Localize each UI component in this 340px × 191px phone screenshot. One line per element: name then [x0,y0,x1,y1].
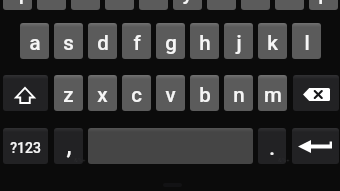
staticText: n [233,83,245,107]
staticText: f [133,31,141,55]
button[interactable]: h [190,23,219,59]
button[interactable]: p [309,0,338,10]
button[interactable]: q [3,0,32,10]
button[interactable]: , [54,128,83,164]
button[interactable]: Backspace [293,75,339,111]
button[interactable]: c [122,75,151,111]
staticText: ?123 [10,140,41,156]
staticText: k [267,31,278,55]
button[interactable]: y [173,0,202,10]
button[interactable]: n [224,75,253,111]
staticText: &%+ [278,156,290,163]
button[interactable]: u [207,0,236,10]
button[interactable]: Space [88,128,253,164]
button[interactable]: z [54,75,83,111]
button[interactable]: b [190,75,219,111]
button[interactable]: t [139,0,168,10]
staticText: h [199,31,211,55]
staticText: l [304,31,310,55]
staticText: b [199,83,211,107]
staticText: x [97,83,108,107]
staticText: z [63,83,74,107]
staticText: m [264,83,282,107]
staticText: p [318,0,330,5]
staticText: a [29,31,41,55]
staticText: c [131,83,142,107]
button[interactable]: v [156,75,185,111]
button[interactable]: x [88,75,117,111]
staticText: d [97,31,109,55]
button[interactable]: m [258,75,287,111]
staticText: g [165,31,177,55]
button[interactable]: s [54,23,83,59]
button[interactable]: . [258,128,286,164]
button[interactable]: l [292,23,321,59]
button[interactable]: ?123 [3,128,48,164]
button[interactable]: Shift [3,75,48,111]
button[interactable]: o [275,0,304,10]
button[interactable]: a [20,23,49,59]
button[interactable]: g [156,23,185,59]
button[interactable]: w [37,0,66,10]
button[interactable]: i [241,0,270,10]
staticText: s [63,31,74,55]
staticText: v [165,83,176,107]
staticText: q [12,0,24,5]
staticText: j [236,31,242,55]
staticText: , [66,133,72,160]
button[interactable]: f [122,23,151,59]
button[interactable]: k [258,23,287,59]
staticText: &%+ [74,156,86,163]
button[interactable]: d [88,23,117,59]
button[interactable]: r [105,0,134,10]
button[interactable]: e [71,0,100,10]
staticText: y [182,0,193,5]
button[interactable]: j [224,23,253,59]
staticText: . [269,136,275,160]
button[interactable]: Enter [292,128,339,164]
